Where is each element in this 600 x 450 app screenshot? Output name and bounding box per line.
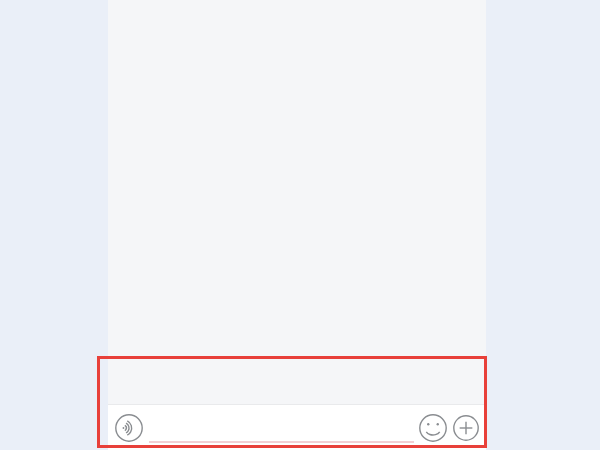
button[interactable]: Add attachment [450, 412, 482, 444]
button[interactable]: Voice message [111, 410, 147, 446]
button[interactable]: Emoji [416, 411, 450, 445]
button[interactable]: Message input [147, 405, 416, 450]
